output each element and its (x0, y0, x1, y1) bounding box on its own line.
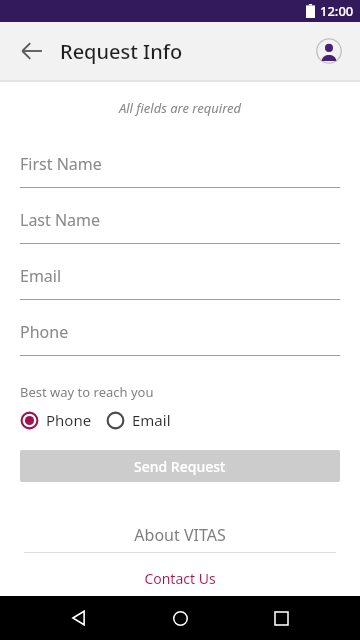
button[interactable]: Back (57, 596, 101, 640)
staticText: Request Info (60, 38, 183, 65)
button[interactable]: Recents (259, 596, 303, 640)
button[interactable]: Email (0, 253, 360, 309)
staticText: Email (20, 265, 62, 287)
button[interactable]: Account (308, 30, 350, 72)
staticText: Contact Us (144, 569, 216, 588)
button[interactable]: Phone (0, 309, 360, 365)
button[interactable]: Phone (20, 410, 92, 430)
staticText: Email (132, 410, 171, 430)
staticText: About VITAS (0, 524, 360, 546)
staticText: Send Request (134, 457, 226, 476)
staticText: Phone (20, 321, 69, 343)
button[interactable]: Home (158, 596, 202, 640)
button[interactable]: Back (10, 29, 54, 73)
button[interactable]: Email (106, 410, 171, 430)
button[interactable]: Send Request (20, 450, 340, 482)
button[interactable]: Last Name (0, 197, 360, 253)
staticText: Last Name (20, 209, 101, 231)
button[interactable]: Contact Us (0, 569, 360, 588)
staticText: First Name (20, 153, 102, 175)
staticText: All fields are required (0, 99, 360, 117)
button[interactable]: First Name (0, 141, 360, 197)
staticText: 12:00 (320, 2, 354, 20)
staticText: Phone (46, 410, 92, 430)
staticText: Best way to reach you (20, 383, 154, 401)
